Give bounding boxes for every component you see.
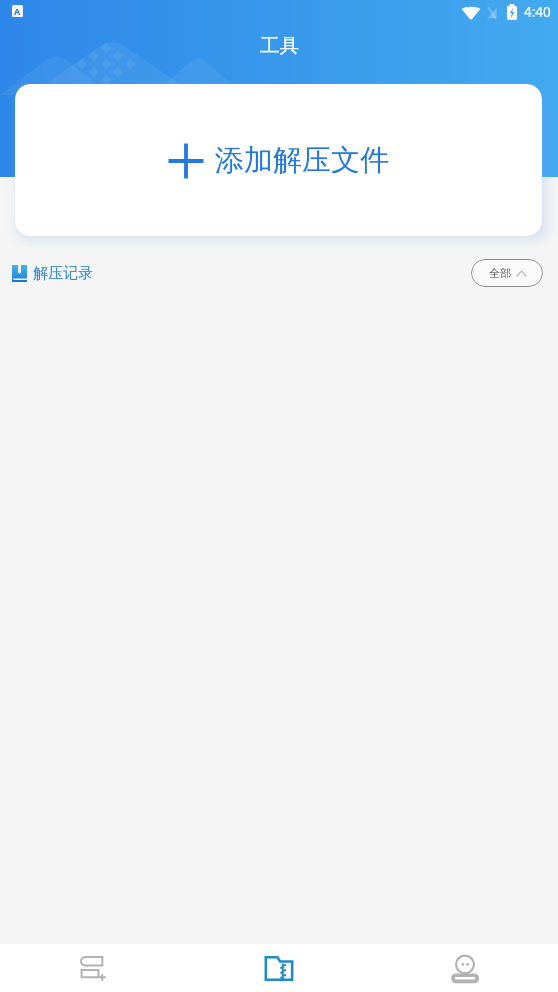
button[interactable]: Compress files	[0, 944, 186, 992]
button[interactable]: 添加解压文件	[15, 84, 542, 236]
button[interactable]: 解压记录	[12, 264, 93, 283]
staticText: 全部	[489, 266, 511, 280]
staticText: 4:40	[524, 3, 551, 21]
staticText: 解压记录	[33, 264, 93, 283]
staticText: A	[14, 5, 21, 17]
button[interactable]: Account	[372, 944, 558, 992]
staticText: 工具	[260, 33, 299, 58]
button[interactable]: Archives	[186, 944, 372, 992]
staticText: 添加解压文件	[215, 142, 389, 179]
button[interactable]: 全部	[471, 259, 543, 287]
